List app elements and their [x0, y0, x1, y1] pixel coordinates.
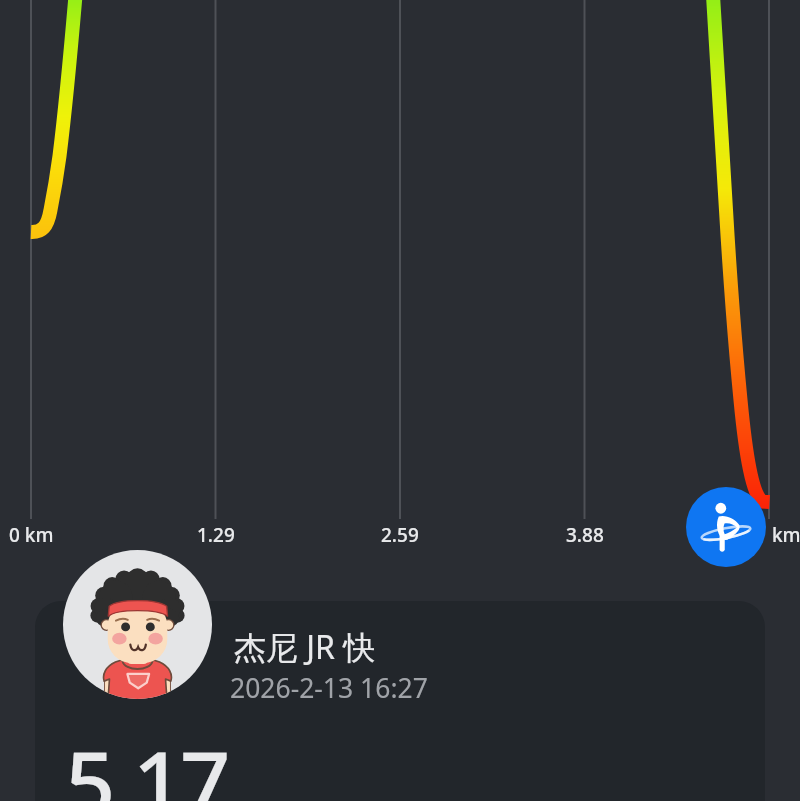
staticText: 3.88: [566, 522, 604, 548]
staticText: 0 km: [9, 522, 54, 548]
staticText: 杰尼 JR 快: [234, 625, 376, 669]
staticText: 5.17: [65, 721, 228, 801]
button[interactable]: Profile avatar: [63, 550, 212, 699]
staticText: km: [772, 522, 800, 548]
staticText: 2.59: [381, 522, 419, 548]
button[interactable]: 杰尼 JR 快: [35, 601, 765, 801]
staticText: 2026-2-13 16:27: [230, 670, 428, 706]
button[interactable]: Activity type: [686, 487, 766, 567]
staticText: 1.29: [197, 522, 235, 548]
